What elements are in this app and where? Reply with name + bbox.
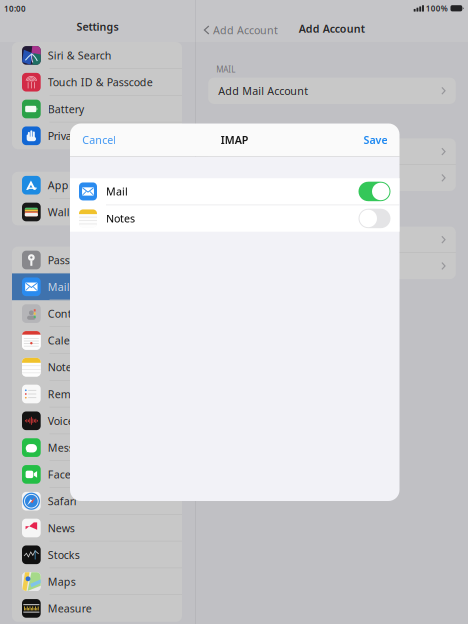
staticText: Save [363,133,387,147]
button[interactable]: Messages [12,434,182,461]
button[interactable]: Contacts [12,300,182,327]
button[interactable]: App Store [12,172,182,199]
button[interactable] [208,138,456,165]
button[interactable]: Save [363,125,399,155]
staticText: Maps [48,574,76,589]
button[interactable]: Touch ID & Passcode [12,69,182,96]
button[interactable]: Cancel [70,125,116,155]
staticText: Mail [106,184,128,199]
staticText: Mail [48,280,70,294]
staticText: News [48,521,75,535]
button[interactable]: Calendar [12,327,182,354]
staticText: Notes [48,360,77,374]
button[interactable]: Notes [12,354,182,381]
button[interactable]: Reminders [12,381,182,407]
button[interactable] [208,253,456,279]
button[interactable]: Privacy [12,122,182,149]
staticText: Safari [48,494,77,508]
staticText: 10:00 [4,3,26,14]
button[interactable]: Maps [12,568,182,595]
button[interactable]: Measure [12,595,182,622]
button[interactable] [208,165,456,191]
staticText: Add Mail Account [218,84,308,98]
staticText: Voice Memos [48,414,114,428]
staticText: Passwords & Accounts [48,253,160,267]
staticText: Stocks [48,548,80,562]
staticText: Calendar [48,333,94,347]
staticText: Contacts [48,306,92,321]
staticText: Add Account [299,21,365,36]
staticText: Settings [76,19,118,34]
button[interactable]: Add Mail Account [208,78,456,104]
button[interactable] [208,226,456,253]
staticText: IMAP [221,133,249,147]
staticText: Wallet & Apple Pay [48,205,144,219]
staticText: Privacy [48,129,82,143]
staticText: 100% [426,3,448,14]
staticText: FaceTime [48,467,96,481]
staticText: Messages [48,440,98,455]
staticText: Battery [48,102,84,116]
button[interactable]: Add Account [196,18,278,42]
staticText: Touch ID & Passcode [48,75,153,89]
button[interactable]: Stocks [12,541,182,568]
staticText: Add Account [213,23,278,37]
button[interactable]: Voice Memos [12,407,182,434]
button[interactable]: Mail [12,273,182,300]
staticText: Siri & Search [48,48,112,62]
staticText: Measure [48,601,92,615]
staticText: MAIL [216,64,235,75]
staticText: Notes [106,211,135,226]
button[interactable]: Mail [70,178,399,205]
staticText: Reminders [48,387,103,401]
staticText: Cancel [82,133,116,147]
button[interactable]: Siri & Search [12,42,182,69]
button[interactable]: Battery [12,96,182,122]
button[interactable]: Wallet & Apple Pay [12,199,182,225]
button[interactable]: Passwords & Accounts [12,247,182,273]
button[interactable]: FaceTime [12,461,182,488]
button[interactable]: Notes [70,205,399,232]
staticText: App Store [48,178,98,192]
button[interactable]: News [12,515,182,541]
button[interactable]: Safari [12,488,182,515]
